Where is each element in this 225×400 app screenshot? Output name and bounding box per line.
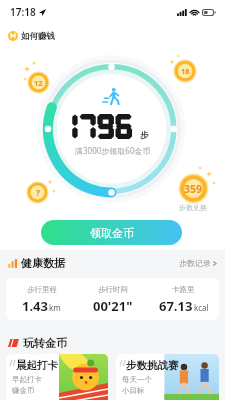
- staticText: 17:18: [10, 5, 36, 19]
- button[interactable]: 晨起打卡: [6, 354, 108, 400]
- staticText: 步行里程: [27, 285, 57, 294]
- staticText: 18: [181, 66, 190, 76]
- staticText: kcal: [194, 302, 209, 313]
- staticText: 晨起打卡: [16, 359, 58, 372]
- staticText: ?: [36, 187, 40, 198]
- staticText: 小目标: [122, 386, 145, 395]
- staticText: 如何赚钱: [21, 31, 55, 42]
- staticText: 步数挑战赛: [126, 359, 179, 372]
- staticText: 健康数据: [21, 256, 65, 270]
- staticText: 步数记录: [179, 258, 211, 268]
- staticText: 12: [34, 78, 43, 88]
- button[interactable]: 步数挑战赛: [116, 354, 219, 400]
- button[interactable]: 如何赚钱: [8, 28, 55, 44]
- staticText: 满3000步领取60金币: [75, 145, 151, 156]
- staticText: 00'21": [93, 297, 133, 315]
- staticText: 步数兑换: [179, 203, 207, 212]
- staticText: 领取金币: [90, 226, 134, 240]
- staticText: 步行时间: [98, 285, 128, 294]
- button[interactable]: 领取金币: [41, 220, 182, 245]
- button[interactable]: 金币 12: [27, 71, 50, 94]
- staticText: 卡路里: [172, 285, 195, 294]
- staticText: 67.13: [159, 297, 193, 315]
- staticText: 每天一个: [122, 375, 152, 384]
- button[interactable]: 步数兑换: [174, 203, 212, 212]
- staticText: 玩转金币: [23, 336, 67, 349]
- button[interactable]: 金币 359: [178, 173, 209, 204]
- staticText: 赚金币: [12, 386, 35, 395]
- button[interactable]: 金币 18: [173, 59, 197, 83]
- staticText: 359: [184, 182, 203, 196]
- staticText: 早起打卡: [12, 375, 42, 384]
- staticText: km: [49, 302, 61, 313]
- staticText: 步: [140, 130, 149, 141]
- button[interactable]: 步数记录: [179, 258, 217, 268]
- staticText: 1.43: [22, 297, 48, 315]
- button[interactable]: 金币 ?: [26, 181, 49, 204]
